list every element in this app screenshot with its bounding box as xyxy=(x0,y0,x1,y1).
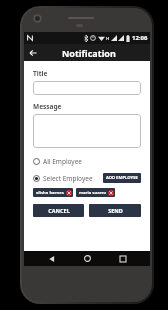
button[interactable]: Home xyxy=(80,251,95,266)
button[interactable]: ADD EMPLOYEE xyxy=(103,173,141,183)
button[interactable]: maria suarez xyxy=(76,188,115,197)
staticText: All Employee xyxy=(43,157,83,166)
staticText: ADD EMPLOYEE xyxy=(106,175,138,181)
button[interactable]: Select Employee xyxy=(33,174,103,183)
staticText: alisha barnes xyxy=(36,190,64,196)
button[interactable] xyxy=(33,81,141,95)
staticText: CANCEL xyxy=(48,207,70,214)
staticText: Message xyxy=(33,102,62,111)
staticText: Notification xyxy=(62,47,116,59)
button[interactable]: All Employee xyxy=(33,157,141,166)
staticText: Select Employee xyxy=(43,174,93,183)
staticText: 12:06 xyxy=(132,34,148,42)
button[interactable]: SEND xyxy=(89,204,141,217)
staticText: maria suarez xyxy=(79,190,106,196)
staticText: Title xyxy=(33,69,48,78)
button[interactable]: Recent apps xyxy=(115,251,130,266)
staticText: H xyxy=(106,36,110,41)
button[interactable]: alisha barnes xyxy=(33,188,73,197)
staticText: SEND xyxy=(108,207,123,214)
button[interactable]: CANCEL xyxy=(33,204,84,217)
button[interactable]: Back xyxy=(44,251,59,266)
button[interactable] xyxy=(33,114,141,148)
button[interactable]: Back xyxy=(24,44,41,61)
